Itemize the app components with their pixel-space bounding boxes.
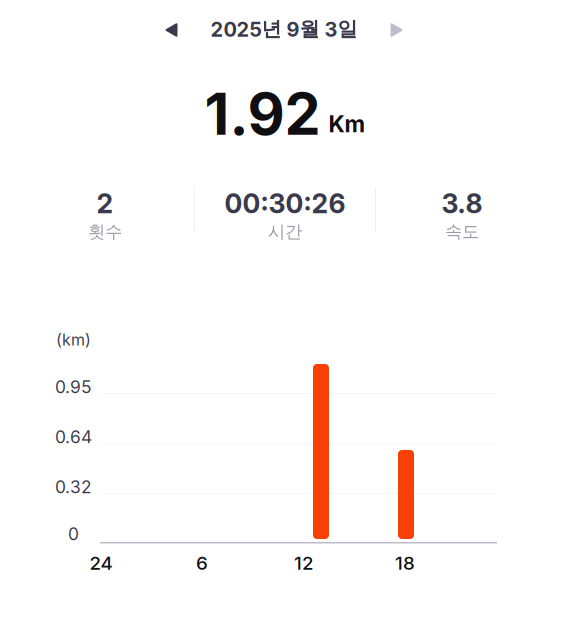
staticText: 0.64: [55, 426, 92, 447]
staticText: (km): [56, 330, 91, 349]
staticText: 횟수: [88, 221, 122, 242]
button[interactable]: Previous day: [149, 8, 193, 52]
staticText: 3.8: [441, 187, 482, 220]
staticText: 6: [196, 552, 208, 574]
staticText: 00:30:26: [224, 187, 345, 220]
staticText: Km: [328, 110, 365, 138]
button[interactable]: Next day: [375, 8, 419, 52]
staticText: 시간: [268, 221, 302, 242]
staticText: 24: [89, 552, 112, 574]
staticText: 0.32: [55, 476, 92, 497]
staticText: 2: [96, 187, 113, 220]
staticText: 18: [395, 552, 415, 574]
staticText: 0: [68, 523, 79, 544]
staticText: 1.92: [204, 79, 320, 149]
staticText: 12: [294, 552, 314, 574]
staticText: 속도: [445, 221, 479, 242]
staticText: 2025년 9월 3일: [210, 16, 357, 42]
staticText: 0.95: [55, 376, 92, 397]
